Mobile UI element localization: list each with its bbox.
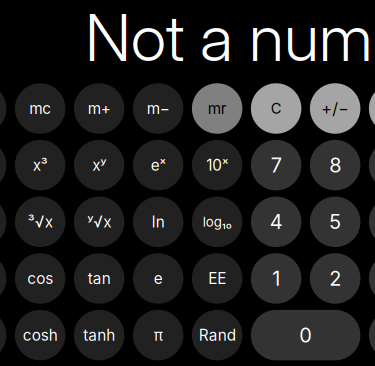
staticText: e	[154, 269, 163, 288]
staticText: 10ˣ	[206, 156, 228, 174]
staticText: π	[154, 326, 163, 344]
staticText: mr	[208, 99, 227, 118]
button[interactable]: x³	[15, 140, 65, 190]
button[interactable]: sinh	[0, 310, 6, 360]
staticText: mc	[29, 99, 51, 118]
button[interactable]: cosh	[15, 310, 65, 360]
button[interactable]: %	[369, 83, 375, 134]
button[interactable]: tanh	[74, 310, 124, 360]
button[interactable]: mr	[192, 83, 242, 134]
button[interactable]: EE	[192, 253, 242, 304]
button[interactable]: 4	[251, 197, 301, 247]
staticText: 8	[329, 153, 341, 177]
staticText: Not a number	[85, 0, 375, 77]
button[interactable]: 10ˣ	[192, 140, 242, 190]
button[interactable]: ²√x	[0, 197, 6, 247]
staticText: eˣ	[151, 156, 166, 174]
button[interactable]: 1	[251, 253, 301, 304]
button[interactable]: 2	[310, 253, 360, 304]
button[interactable]: 6	[369, 197, 375, 247]
button[interactable]: 7	[251, 140, 301, 190]
staticText: +/−	[321, 99, 349, 118]
button[interactable]: m−	[133, 83, 183, 134]
button[interactable]: sin	[0, 253, 6, 304]
staticText: 4	[270, 210, 283, 234]
button[interactable]: x²	[0, 140, 6, 190]
button[interactable]: )	[0, 83, 6, 134]
button[interactable]: 9	[369, 140, 375, 190]
staticText: EE	[208, 269, 226, 288]
staticText: tan	[88, 269, 111, 288]
staticText: 7	[271, 153, 282, 177]
staticText: 0	[299, 323, 312, 347]
button[interactable]: 5	[310, 197, 360, 247]
button[interactable]: log₁₀	[192, 197, 242, 247]
staticText: xʸ	[92, 156, 106, 174]
button[interactable]: mc	[15, 83, 65, 134]
staticText: cosh	[23, 326, 58, 344]
button[interactable]: m+	[74, 83, 124, 134]
staticText: ln	[152, 212, 165, 231]
button[interactable]: 0	[251, 310, 360, 360]
staticText: 1	[272, 266, 280, 291]
staticText: x³	[33, 156, 48, 174]
staticText: 2	[329, 266, 341, 291]
staticText: C	[271, 100, 282, 117]
staticText: ʸ√x	[87, 212, 111, 231]
button[interactable]: e	[133, 253, 183, 304]
button[interactable]: π	[133, 310, 183, 360]
button[interactable]: ³√x	[15, 197, 65, 247]
staticText: Rand	[199, 326, 236, 344]
button[interactable]: Rand	[192, 310, 242, 360]
staticText: ³√x	[28, 212, 53, 231]
button[interactable]: cos	[15, 253, 65, 304]
button[interactable]: 3	[369, 253, 375, 304]
button[interactable]: +/−	[310, 83, 360, 134]
button[interactable]: C	[251, 83, 301, 134]
staticText: tanh	[83, 326, 115, 344]
button[interactable]: ln	[133, 197, 183, 247]
button[interactable]: .	[369, 310, 375, 360]
staticText: 5	[329, 210, 341, 234]
button[interactable]: eˣ	[133, 140, 183, 190]
button[interactable]: tan	[74, 253, 124, 304]
staticText: m−	[147, 99, 170, 118]
button[interactable]: ʸ√x	[74, 197, 124, 247]
button[interactable]: xʸ	[74, 140, 124, 190]
staticText: m+	[88, 99, 111, 118]
staticText: cos	[27, 269, 53, 288]
button[interactable]: 8	[310, 140, 360, 190]
staticText: log₁₀	[203, 214, 232, 230]
